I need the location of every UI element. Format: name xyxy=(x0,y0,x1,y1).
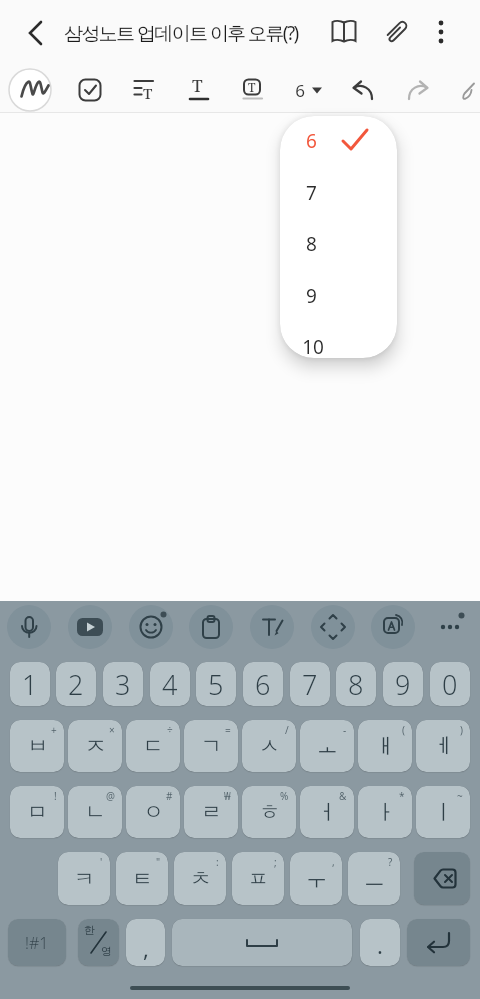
button[interactable] xyxy=(407,919,470,966)
button[interactable]: 8 xyxy=(336,662,376,706)
staticText: , xyxy=(332,855,335,869)
button[interactable] xyxy=(280,269,397,320)
button[interactable] xyxy=(7,605,51,649)
button[interactable]: T xyxy=(121,68,165,112)
staticText: 한 xyxy=(84,923,95,937)
button[interactable] xyxy=(428,605,472,649)
staticText: ㅁ xyxy=(27,799,48,825)
staticText: : xyxy=(216,855,219,869)
button[interactable]: !#1 xyxy=(8,919,66,966)
staticText: " xyxy=(156,855,161,869)
staticText: ㅔ xyxy=(433,733,454,759)
button[interactable]: 6 xyxy=(243,662,283,706)
button[interactable]: ㅋ xyxy=(58,852,110,905)
button[interactable] xyxy=(68,68,112,112)
staticText: 4 xyxy=(162,666,178,703)
staticText: ㅓ xyxy=(317,799,338,825)
button[interactable] xyxy=(68,605,112,649)
staticText: ㅣ xyxy=(433,799,454,825)
button[interactable]: 한 xyxy=(78,919,119,966)
button[interactable] xyxy=(280,116,397,167)
button[interactable]: 9 xyxy=(383,662,423,706)
staticText: ㅡ xyxy=(364,866,385,892)
button[interactable] xyxy=(322,10,366,54)
staticText: ? xyxy=(388,855,393,869)
button[interactable]: ㅂ xyxy=(10,720,64,772)
button[interactable] xyxy=(371,605,415,649)
button[interactable]: ㅍ xyxy=(232,852,284,905)
button[interactable]: ㅇ xyxy=(126,786,180,838)
button[interactable]: , xyxy=(126,919,165,966)
button[interactable]: 2 xyxy=(56,662,96,706)
button[interactable]: ㅐ xyxy=(358,720,412,772)
button[interactable]: ㅅ xyxy=(242,720,296,772)
button[interactable]: ㅎ xyxy=(242,786,296,838)
staticText: ㅗ xyxy=(317,733,338,759)
button[interactable]: ㅔ xyxy=(416,720,470,772)
button[interactable] xyxy=(311,605,355,649)
button[interactable]: ㅓ xyxy=(300,786,354,838)
button[interactable]: 7 xyxy=(290,662,330,706)
button[interactable]: 0 xyxy=(430,662,470,706)
button[interactable] xyxy=(374,10,418,54)
button[interactable] xyxy=(340,68,384,112)
button[interactable]: ㄹ xyxy=(184,786,238,838)
button[interactable] xyxy=(172,919,352,966)
button[interactable]: 6 xyxy=(284,68,328,112)
staticText: ~ xyxy=(457,789,463,803)
button[interactable]: ㅌ xyxy=(116,852,168,905)
staticText: @ xyxy=(106,789,115,803)
staticText: 5 xyxy=(208,666,224,703)
button[interactable]: ㄴ xyxy=(68,786,122,838)
button[interactable]: ㅡ xyxy=(348,852,400,905)
staticText: 6 xyxy=(295,79,305,102)
button[interactable] xyxy=(280,167,397,218)
staticText: ( xyxy=(402,723,405,737)
button[interactable] xyxy=(414,852,470,905)
button[interactable]: . xyxy=(360,919,400,966)
button[interactable] xyxy=(189,605,233,649)
staticText: 9 xyxy=(306,283,317,309)
staticText: T xyxy=(143,83,153,103)
button[interactable]: ㅣ xyxy=(416,786,470,838)
staticText: * xyxy=(399,789,405,803)
button[interactable]: 5 xyxy=(196,662,236,706)
staticText: 영 xyxy=(101,944,112,958)
button[interactable]: 4 xyxy=(150,662,190,706)
button[interactable] xyxy=(280,320,397,358)
staticText: 10 xyxy=(302,334,324,360)
staticText: ' xyxy=(100,855,103,869)
staticText: ㅏ xyxy=(375,799,396,825)
staticText: 3 xyxy=(115,666,131,703)
button[interactable] xyxy=(8,68,52,112)
button[interactable]: ㄱ xyxy=(184,720,238,772)
staticText: ㅋ xyxy=(74,866,95,892)
button[interactable]: ㅏ xyxy=(358,786,412,838)
button[interactable]: 3 xyxy=(103,662,143,706)
button[interactable] xyxy=(280,218,397,269)
button[interactable]: T xyxy=(176,68,220,112)
staticText: - xyxy=(343,723,347,737)
button[interactable]: ㅁ xyxy=(10,786,64,838)
button[interactable]: T xyxy=(230,68,274,112)
button[interactable]: ㅜ xyxy=(290,852,342,905)
staticText: ㅅ xyxy=(259,733,280,759)
button[interactable]: ㅊ xyxy=(174,852,226,905)
button[interactable] xyxy=(397,68,441,112)
staticText: 9 xyxy=(395,666,411,703)
staticText: ㅎ xyxy=(259,799,280,825)
staticText: ㅇ xyxy=(143,799,164,825)
button[interactable]: ㅈ xyxy=(68,720,122,772)
button[interactable]: 1 xyxy=(10,662,50,706)
staticText: 7 xyxy=(302,666,318,703)
button[interactable] xyxy=(419,10,463,54)
staticText: 2 xyxy=(68,666,84,703)
staticText: , xyxy=(143,933,149,963)
button[interactable] xyxy=(13,11,57,55)
button[interactable] xyxy=(129,605,173,649)
button[interactable] xyxy=(250,605,294,649)
staticText: ; xyxy=(274,855,277,869)
button[interactable]: ㄷ xyxy=(126,720,180,772)
button[interactable]: ㅗ xyxy=(300,720,354,772)
staticText: 6 xyxy=(306,128,317,154)
